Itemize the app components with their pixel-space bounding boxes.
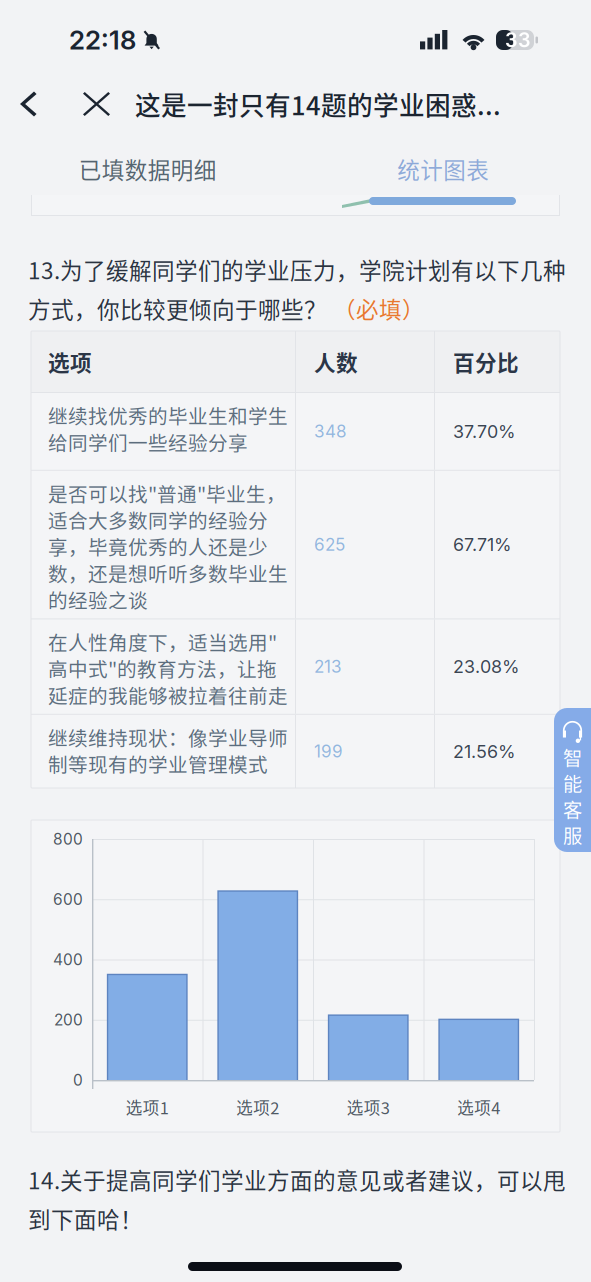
button[interactable]: 返回 — [0, 75, 65, 133]
staticText: 199 — [314, 741, 343, 762]
button[interactable]: 关闭 — [65, 75, 124, 133]
staticText: 适合大多数同学的经验分 — [48, 505, 268, 534]
staticText: 能 — [563, 769, 582, 797]
staticText: 继续找优秀的毕业生和学生 — [48, 401, 288, 429]
staticText: 22:18 — [69, 24, 136, 56]
staticText: 智 — [563, 743, 582, 771]
staticText: 高中式"的教育方法，让拖 — [48, 654, 277, 682]
staticText: （必填） — [333, 292, 425, 325]
staticText: 人数 — [314, 346, 358, 377]
staticText: 选项1 — [126, 1095, 169, 1119]
staticText: 延症的我能够被拉着往前走 — [48, 681, 288, 709]
staticText: 这是一封只有14题的学业困惑... — [135, 85, 501, 123]
staticText: 0 — [73, 1071, 83, 1089]
staticText: 选项 — [48, 346, 92, 377]
staticText: 200 — [54, 1010, 83, 1029]
staticText: 继续维持现状：像学业导师 — [48, 723, 288, 751]
staticText: 的经验之谈 — [48, 585, 148, 614]
staticText: 800 — [53, 830, 83, 848]
staticText: 33 — [505, 28, 531, 52]
staticText: 23.08% — [453, 656, 520, 677]
staticText: 制等现有的学业管理模式 — [48, 749, 268, 778]
staticText: 625 — [314, 534, 345, 555]
staticText: 数，还是想听听多数毕业生 — [48, 559, 288, 587]
staticText: 选项3 — [347, 1095, 390, 1119]
staticText: 享，毕竟优秀的人还是少 — [48, 532, 268, 560]
button[interactable]: 统计图表 — [295, 138, 591, 200]
staticText: 选项2 — [236, 1095, 279, 1119]
staticText: 给同学们一些经验分享 — [48, 428, 248, 456]
staticText: 37.70% — [453, 421, 516, 442]
staticText: 是否可以找"普通"毕业生， — [48, 479, 286, 507]
staticText: 400 — [53, 950, 83, 969]
button[interactable]: 已填数据明细 — [0, 138, 295, 200]
staticText: 到下面哈！ — [28, 1202, 143, 1235]
staticText: 方式，你比较更倾向于哪些？ — [28, 292, 327, 325]
staticText: 14.关于提高同学们学业方面的意见或者建议，可以甩 — [28, 1163, 566, 1196]
staticText: 13.为了缓解同学们的学业压力，学院计划有以下几种 — [28, 253, 566, 286]
staticText: 67.71% — [453, 534, 512, 555]
staticText: 348 — [314, 421, 347, 442]
staticText: 21.56% — [453, 741, 516, 762]
staticText: 600 — [53, 890, 83, 909]
staticText: 服 — [563, 821, 582, 849]
staticText: 在人性角度下，适当选用" — [48, 627, 277, 656]
staticText: 已填数据明细 — [79, 153, 217, 185]
staticText: 213 — [314, 656, 342, 677]
staticText: 选项4 — [457, 1095, 500, 1119]
staticText: 统计图表 — [397, 153, 489, 185]
button[interactable]: 智能客服 — [554, 708, 591, 852]
staticText: 客 — [563, 795, 582, 823]
staticText: 百分比 — [453, 346, 519, 377]
